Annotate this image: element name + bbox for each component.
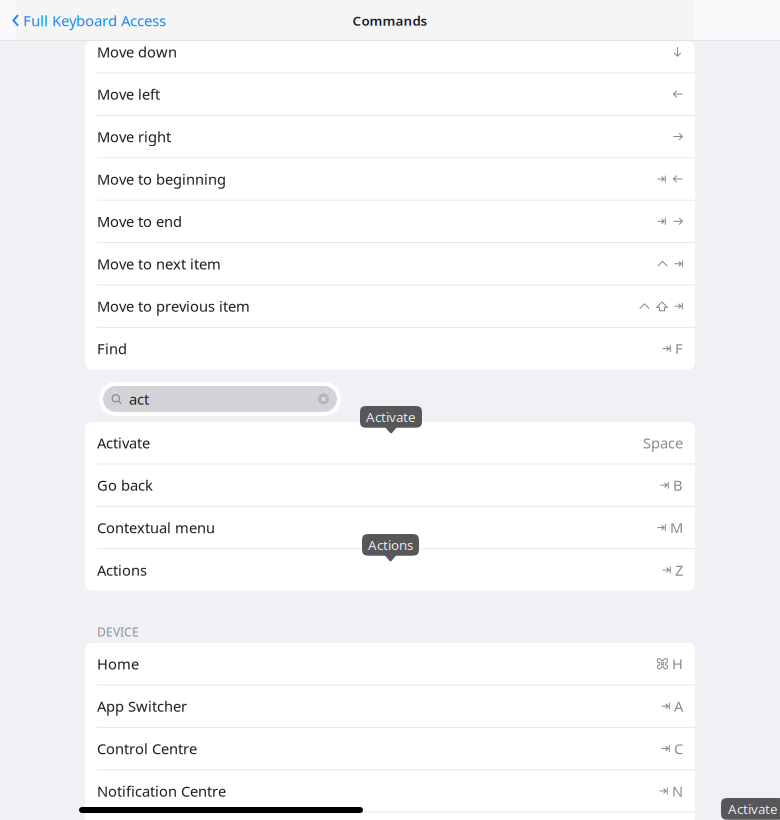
staticText: H <box>672 654 683 673</box>
staticText: M <box>670 518 683 537</box>
button[interactable]: Full Keyboard Access <box>0 0 166 41</box>
staticText: Actions <box>97 560 147 580</box>
button[interactable]: Find <box>85 328 695 369</box>
staticText: A <box>674 696 683 716</box>
staticText: Home <box>97 654 139 673</box>
staticText: Contextual menu <box>97 518 215 537</box>
staticText: F <box>675 339 683 358</box>
staticText: Activate <box>97 433 150 452</box>
button[interactable]: Move left <box>85 73 695 115</box>
staticText: C <box>674 739 683 758</box>
button[interactable]: Contextual menu <box>85 507 695 548</box>
staticText: B <box>673 475 683 495</box>
staticText: Control Centre <box>97 739 197 758</box>
staticText: Move to beginning <box>97 169 226 189</box>
button[interactable]: Move to previous item <box>85 285 695 327</box>
staticText: Full Keyboard Access <box>23 11 166 30</box>
staticText: act <box>129 389 149 409</box>
button[interactable]: Move right <box>85 116 695 157</box>
staticText: Space <box>643 433 683 452</box>
staticText: Go back <box>97 475 153 495</box>
staticText: Notification Centre <box>97 781 226 801</box>
staticText: Move to previous item <box>97 296 250 316</box>
button[interactable]: Notification Centre <box>85 770 695 812</box>
staticText: Find <box>97 339 127 358</box>
button[interactable]: Move to end <box>85 201 695 242</box>
staticText: App Switcher <box>97 696 187 716</box>
staticText: Move down <box>97 42 177 61</box>
staticText: Move right <box>97 127 171 146</box>
staticText: Commands <box>352 12 427 29</box>
staticText: Z <box>675 560 683 580</box>
button[interactable]: Activate <box>85 422 695 463</box>
button[interactable]: Actions <box>85 549 695 591</box>
button[interactable]: Home <box>85 643 695 684</box>
button[interactable]: Go back <box>85 464 695 506</box>
button[interactable]: Move to beginning <box>85 158 695 200</box>
staticText: N <box>672 781 683 801</box>
staticText: Actions <box>368 536 413 554</box>
staticText: Activate <box>366 408 416 426</box>
staticText: Move to end <box>97 212 182 231</box>
staticText: Move to next item <box>97 254 221 273</box>
staticText: Move left <box>97 84 160 104</box>
button[interactable]: Control Centre <box>85 728 695 769</box>
staticText: Activate <box>728 800 778 818</box>
button[interactable]: Move down <box>85 31 695 72</box>
button[interactable]: Move to next item <box>85 243 695 284</box>
button[interactable]: App Switcher <box>85 685 695 727</box>
staticText: DEVICE <box>97 624 139 640</box>
